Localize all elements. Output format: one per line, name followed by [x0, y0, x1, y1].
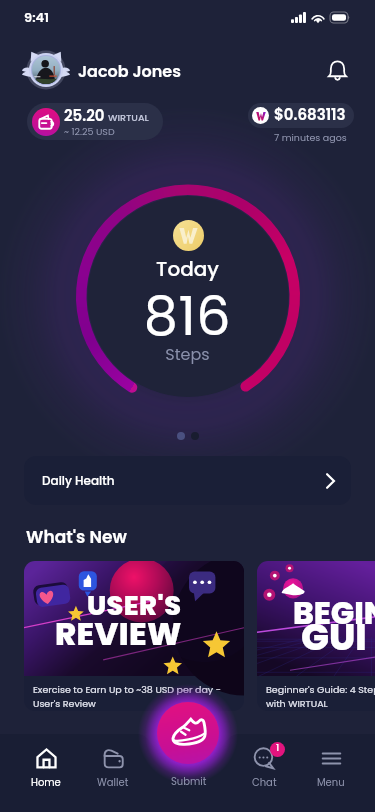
staticText: Submit: [171, 774, 207, 788]
button[interactable]: Menu: [301, 748, 361, 789]
staticText: Jacob Jones: [78, 60, 181, 82]
button[interactable]: Notifications: [321, 54, 353, 86]
button[interactable]: Wallet: [83, 748, 143, 789]
button[interactable]: Submit: [157, 702, 219, 764]
staticText: Daily Health: [42, 472, 115, 489]
staticText: USER'S: [87, 587, 182, 625]
staticText: 7 minutes agos: [274, 131, 347, 144]
staticText: 816: [0, 278, 375, 354]
button[interactable]: Chat: [234, 748, 294, 789]
staticText: GUI: [301, 611, 367, 663]
staticText: Wallet: [97, 775, 129, 789]
staticText: 9:41: [24, 8, 49, 26]
staticText: WIRTUAL: [108, 111, 149, 124]
staticText: ~ 12.25 USD: [64, 125, 115, 138]
staticText: 1: [276, 742, 280, 755]
staticText: Beginner's Guide: 4 Steps to Get Started…: [266, 683, 375, 710]
staticText: Chat: [252, 775, 277, 789]
button[interactable]: 25.20: [27, 103, 163, 140]
staticText: BEGIN: [293, 591, 375, 634]
button[interactable]: $0.683113: [248, 103, 354, 128]
staticText: 25.20: [64, 105, 105, 126]
staticText: Exercise to Earn Up to ~38 USD per day -…: [33, 683, 221, 710]
staticText: $0.683113: [274, 104, 346, 125]
staticText: Steps: [0, 343, 375, 365]
button[interactable]: USER'S: [24, 561, 244, 711]
button[interactable]: Home: [16, 748, 76, 789]
staticText: Home: [31, 775, 61, 789]
button[interactable]: Daily Health: [24, 456, 351, 505]
button[interactable]: BEGIN: [257, 561, 375, 711]
staticText: REVIEW: [55, 611, 182, 656]
staticText: Menu: [317, 775, 345, 789]
staticText: Today: [0, 255, 375, 283]
staticText: What's New: [26, 525, 127, 549]
